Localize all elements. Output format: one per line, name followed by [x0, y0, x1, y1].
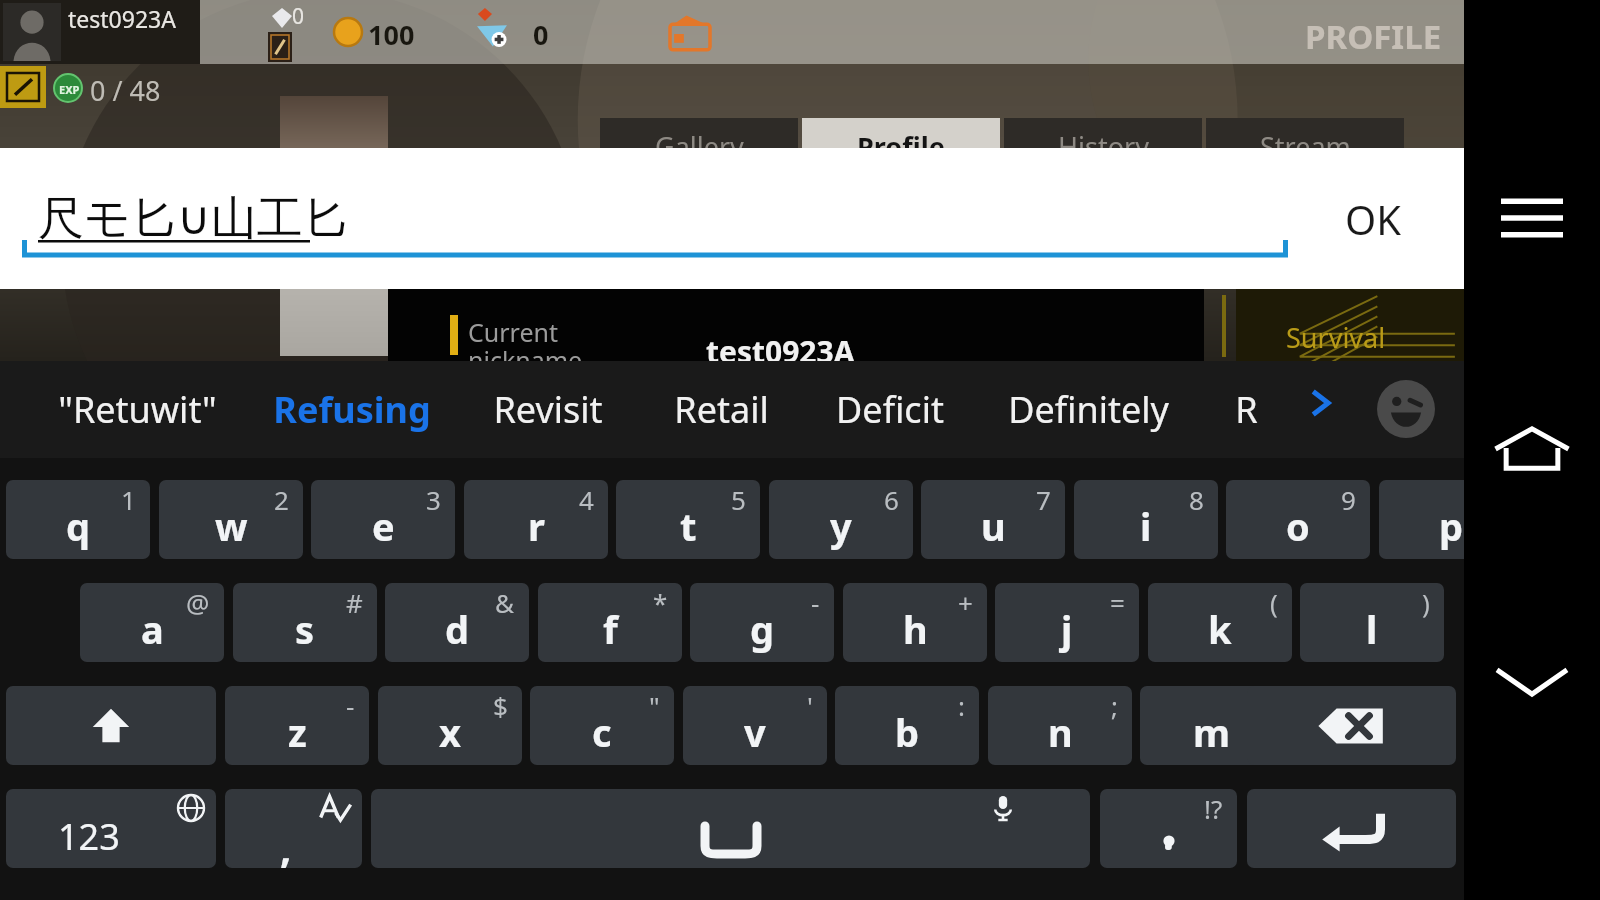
button[interactable]: @ — [80, 583, 224, 662]
staticText: b — [895, 706, 920, 758]
staticText: 4 — [579, 482, 594, 517]
staticText: - — [811, 585, 820, 620]
button[interactable]: $ — [378, 686, 522, 765]
button[interactable]: OK — [1300, 178, 1446, 260]
button[interactable]: Emoji — [1377, 380, 1435, 438]
button[interactable]: - — [690, 583, 834, 662]
button[interactable]: ( — [1148, 583, 1292, 662]
staticText: a — [141, 603, 164, 655]
staticText: 8 — [1189, 482, 1204, 517]
staticText: g — [750, 603, 775, 655]
button[interactable]: Deficit — [797, 369, 983, 449]
button[interactable]: Shift — [6, 686, 216, 765]
staticText: !? — [1204, 791, 1223, 826]
button[interactable]: + — [843, 583, 987, 662]
staticText: u — [981, 500, 1006, 552]
staticText: z — [288, 706, 307, 758]
staticText: j — [1061, 603, 1073, 655]
staticText: n — [1048, 706, 1073, 758]
button[interactable]: test0923A — [0, 0, 200, 64]
staticText: Stream — [1260, 128, 1351, 165]
button[interactable]: More suggestions — [1292, 375, 1348, 431]
button[interactable]: Retail — [638, 369, 804, 449]
staticText: 0 — [533, 16, 549, 53]
button[interactable]: 6 — [769, 480, 913, 559]
button[interactable]: / — [1140, 686, 1284, 765]
button[interactable]: Definitely — [965, 369, 1211, 449]
staticText: p — [1439, 500, 1464, 552]
button[interactable]: 3 — [311, 480, 455, 559]
button[interactable]: Enter — [1247, 789, 1456, 868]
button[interactable]: 9 — [1226, 480, 1370, 559]
button[interactable]: Shop — [668, 12, 712, 56]
button[interactable]: "Retuwit" — [24, 369, 250, 449]
staticText: Revisit — [493, 385, 603, 434]
button[interactable]: Profile — [802, 118, 1000, 174]
button[interactable]: Space — [371, 789, 1090, 868]
staticText: PROFILE — [1305, 14, 1442, 59]
button[interactable]: & — [385, 583, 529, 662]
staticText: h — [903, 603, 928, 655]
button[interactable]: 0 — [1379, 480, 1523, 559]
staticText: 0 — [292, 2, 305, 31]
button[interactable]: ' — [683, 686, 827, 765]
staticText: Survival — [1286, 319, 1386, 356]
staticText: " — [649, 688, 660, 723]
staticText: 3 — [426, 482, 441, 517]
staticText: Deficit — [836, 385, 944, 434]
button[interactable]: , — [225, 789, 362, 868]
staticText: t — [680, 500, 697, 552]
button[interactable]: Backspace — [1247, 686, 1456, 765]
staticText: Definitely — [1008, 385, 1169, 434]
staticText: q — [66, 500, 91, 552]
button[interactable]: Gallery — [600, 118, 798, 174]
button[interactable]: Refusing — [249, 369, 455, 449]
button[interactable]: History — [1004, 118, 1202, 174]
staticText: 9 — [1341, 482, 1356, 517]
staticText: Refusing — [273, 385, 431, 434]
button[interactable]: Revisit — [455, 369, 641, 449]
button[interactable]: ) — [1300, 583, 1444, 662]
button[interactable]: R — [1213, 369, 1279, 449]
staticText: - — [346, 688, 355, 723]
staticText: ' — [807, 688, 813, 723]
staticText: 100 — [368, 16, 415, 53]
staticText: Profile — [857, 128, 945, 165]
button[interactable]: 7 — [921, 480, 1065, 559]
staticText: 1 — [121, 482, 136, 517]
button[interactable]: 123 — [6, 789, 216, 868]
button[interactable]: # — [233, 583, 377, 662]
staticText: . — [1163, 809, 1174, 861]
button[interactable]: !? — [1100, 789, 1237, 868]
staticText: 2 — [274, 482, 289, 517]
button[interactable]: 4 — [464, 480, 608, 559]
button[interactable]: * — [538, 583, 682, 662]
staticText: l — [1366, 603, 1378, 655]
staticText: @ — [186, 585, 210, 620]
button[interactable]: = — [995, 583, 1139, 662]
button[interactable]: Edit nickname — [0, 66, 46, 108]
staticText: Current — [468, 315, 558, 349]
button[interactable]: 5 — [616, 480, 760, 559]
button[interactable]: " — [530, 686, 674, 765]
staticText: "Retuwit" — [58, 385, 217, 434]
button[interactable]: Back — [1464, 632, 1600, 732]
staticText: 5 — [731, 482, 746, 517]
button[interactable]: Recent apps — [1464, 168, 1600, 268]
button[interactable]: Stream — [1206, 118, 1404, 174]
button[interactable]: Home — [1464, 398, 1600, 498]
staticText: = — [1110, 585, 1125, 620]
button[interactable]: : — [835, 686, 979, 765]
staticText: v — [744, 706, 766, 758]
staticText: c — [592, 706, 612, 758]
button[interactable]: ; — [988, 686, 1132, 765]
button[interactable]: 1 — [6, 480, 150, 559]
button[interactable]: - — [225, 686, 369, 765]
button[interactable]: 2 — [159, 480, 303, 559]
button[interactable]: 8 — [1074, 480, 1218, 559]
staticText: e — [372, 500, 395, 552]
staticText: test0923A — [68, 3, 176, 34]
staticText: & — [495, 585, 515, 620]
